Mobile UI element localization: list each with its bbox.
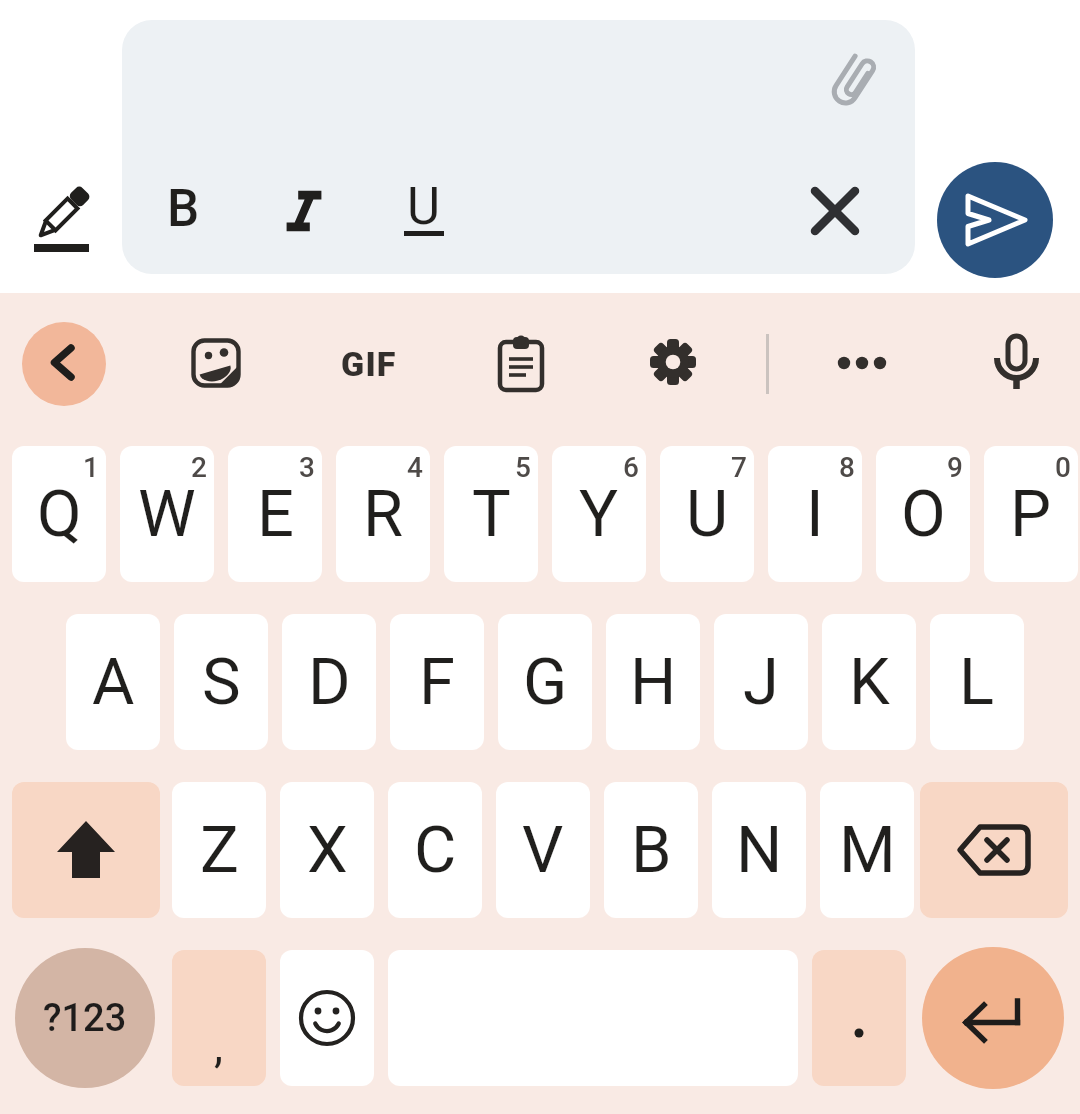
staticText: N <box>736 812 783 888</box>
button[interactable]: M <box>820 782 914 918</box>
button[interactable]: B <box>604 782 698 918</box>
button[interactable]: P <box>984 446 1078 582</box>
staticText: 4 <box>407 451 423 484</box>
button[interactable] <box>268 175 340 247</box>
button[interactable]: Y <box>552 446 646 582</box>
staticText: 3 <box>299 451 315 484</box>
button[interactable]: R <box>336 446 430 582</box>
button[interactable] <box>922 947 1064 1089</box>
button[interactable]: H <box>606 614 700 750</box>
button[interactable]: D <box>282 614 376 750</box>
button[interactable] <box>920 782 1068 918</box>
staticText: I <box>806 476 824 552</box>
staticText: V <box>522 812 564 888</box>
button[interactable]: U <box>388 171 460 243</box>
staticText: GIF <box>341 344 397 384</box>
staticText: X <box>307 812 348 888</box>
staticText: 0 <box>1055 451 1071 484</box>
button[interactable] <box>12 782 160 918</box>
button[interactable]: S <box>174 614 268 750</box>
button[interactable] <box>815 37 895 117</box>
button[interactable] <box>122 20 915 274</box>
button[interactable] <box>988 330 1046 394</box>
button[interactable]: , <box>172 950 266 1086</box>
button[interactable]: A <box>66 614 160 750</box>
button[interactable]: N <box>712 782 806 918</box>
button[interactable]: Q <box>12 446 106 582</box>
staticText: U <box>407 177 441 237</box>
button[interactable]: F <box>390 614 484 750</box>
button[interactable] <box>825 340 899 386</box>
button[interactable]: E <box>228 446 322 582</box>
button[interactable]: T <box>444 446 538 582</box>
button[interactable]: W <box>120 446 214 582</box>
button[interactable]: GIF <box>330 334 408 394</box>
staticText: W <box>138 476 196 552</box>
button[interactable] <box>191 338 241 388</box>
staticText: P <box>1010 476 1052 552</box>
button[interactable]: C <box>388 782 482 918</box>
button[interactable] <box>648 338 698 388</box>
button[interactable] <box>494 332 548 394</box>
staticText: Y <box>579 476 619 552</box>
staticText: A <box>92 644 135 720</box>
button[interactable]: X <box>280 782 374 918</box>
staticText: U <box>686 476 729 552</box>
button[interactable] <box>937 162 1053 278</box>
staticText: 5 <box>515 451 531 484</box>
staticText: 1 <box>83 451 99 484</box>
staticText: B <box>167 179 200 239</box>
staticText: G <box>523 644 568 720</box>
button[interactable]: Z <box>172 782 266 918</box>
staticText: M <box>839 812 896 888</box>
button[interactable] <box>805 181 865 241</box>
staticText: F <box>419 644 455 720</box>
staticText: ?123 <box>43 996 127 1041</box>
button[interactable]: U <box>660 446 754 582</box>
staticText: , <box>214 1019 224 1073</box>
button[interactable]: G <box>498 614 592 750</box>
button[interactable]: J <box>714 614 808 750</box>
staticText: Q <box>37 476 82 552</box>
button[interactable] <box>812 950 906 1086</box>
button[interactable]: O <box>876 446 970 582</box>
staticText: E <box>257 476 294 552</box>
staticText: 8 <box>839 451 855 484</box>
button[interactable]: K <box>822 614 916 750</box>
button[interactable]: B <box>147 173 219 245</box>
staticText: H <box>630 644 677 720</box>
button[interactable]: I <box>768 446 862 582</box>
button[interactable] <box>20 172 104 256</box>
staticText: 9 <box>947 451 963 484</box>
staticText: K <box>849 644 890 720</box>
staticText: B <box>631 812 672 888</box>
button[interactable]: V <box>496 782 590 918</box>
staticText: J <box>743 644 779 720</box>
staticText: R <box>363 476 404 552</box>
staticText: O <box>901 476 946 552</box>
button[interactable] <box>280 950 374 1086</box>
button[interactable] <box>22 322 106 406</box>
staticText: D <box>308 644 351 720</box>
staticText: Z <box>200 812 239 888</box>
staticText: L <box>959 644 995 720</box>
staticText: C <box>414 812 457 888</box>
staticText: 2 <box>191 451 207 484</box>
button[interactable]: L <box>930 614 1024 750</box>
button[interactable]: ?123 <box>15 948 155 1088</box>
staticText: 6 <box>623 451 639 484</box>
staticText: 7 <box>731 451 747 484</box>
staticText: S <box>202 644 241 720</box>
staticText: T <box>472 476 511 552</box>
